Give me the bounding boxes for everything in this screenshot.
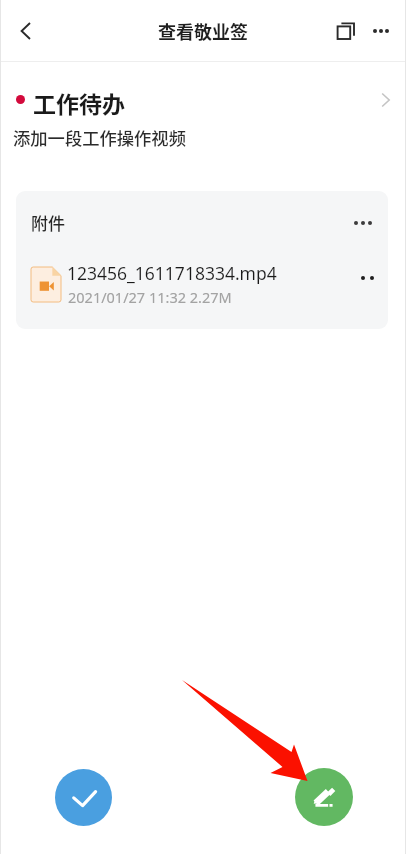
staticText: 123456_1611718334.mp4 <box>67 261 277 285</box>
button[interactable]: File options <box>361 261 388 295</box>
button[interactable]: 123456_1611718334.mp4 <box>16 259 388 305</box>
staticText: 添加一段工作操作视频 <box>13 125 186 150</box>
button[interactable]: Done <box>55 769 112 826</box>
button[interactable]: Attachment options <box>348 208 378 238</box>
staticText: 2021/01/27 11:32 2.27M <box>68 287 232 307</box>
button[interactable]: Back <box>1 6 51 56</box>
button[interactable]: 工作待办 <box>0 84 406 115</box>
button[interactable]: Edit <box>295 768 353 826</box>
staticText: 查看敬业签 <box>158 18 248 44</box>
button[interactable]: More options <box>360 10 402 52</box>
staticText: 附件 <box>31 210 65 235</box>
button[interactable]: Copy <box>325 10 367 52</box>
staticText: 工作待办 <box>33 86 125 117</box>
